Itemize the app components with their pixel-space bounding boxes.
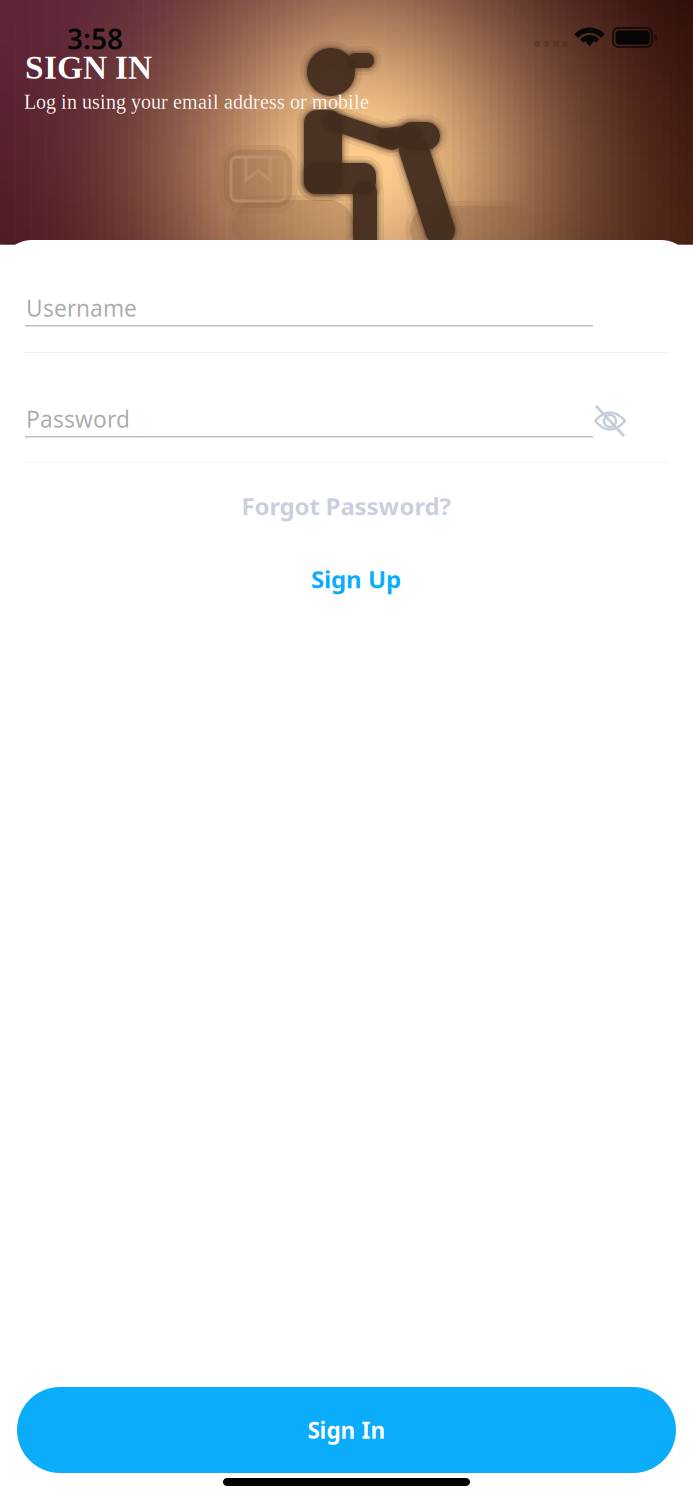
staticText: Username xyxy=(26,293,137,323)
staticText: Password xyxy=(26,404,130,434)
button[interactable]: Sign In xyxy=(17,1387,676,1473)
button[interactable]: Username xyxy=(0,240,643,352)
staticText: Sign Up xyxy=(311,563,401,595)
button[interactable]: Password xyxy=(0,351,593,461)
staticText: 3:58 xyxy=(67,20,123,57)
button[interactable]: Show password xyxy=(579,390,641,452)
staticText: Sign In xyxy=(307,1415,385,1445)
button[interactable]: Sign Up xyxy=(266,555,446,603)
staticText: Log in using your email address or mobil… xyxy=(24,91,369,113)
button[interactable]: Forgot Password? xyxy=(206,482,486,530)
staticText: Forgot Password? xyxy=(241,490,450,522)
staticText: SIGN IN xyxy=(25,49,152,86)
